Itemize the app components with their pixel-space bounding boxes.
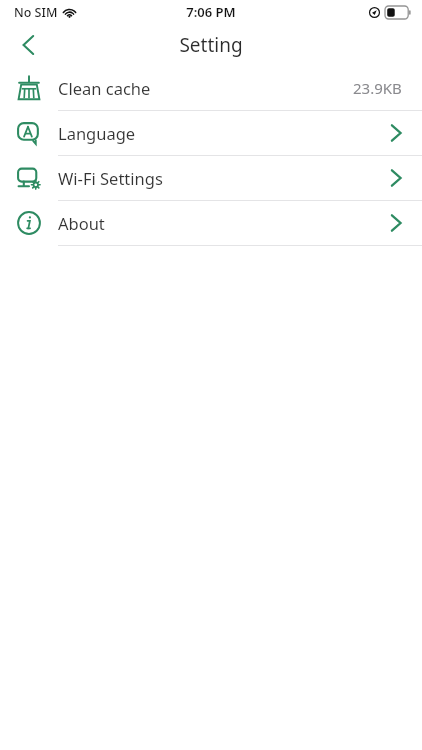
staticText: Wi-Fi Settings: [58, 167, 163, 189]
button[interactable]: Back: [6, 24, 50, 66]
staticText: Language: [58, 122, 136, 144]
staticText: Clean cache: [58, 77, 151, 99]
staticText: 7:06 PM: [186, 3, 236, 21]
button[interactable]: About: [0, 201, 422, 245]
button[interactable]: Clean cache: [0, 66, 422, 110]
staticText: About: [58, 212, 105, 234]
staticText: No SIM: [14, 4, 58, 21]
staticText: 23.9KB: [353, 78, 402, 98]
staticText: Setting: [179, 32, 243, 58]
button[interactable]: Wi-Fi Settings: [0, 156, 422, 200]
button[interactable]: Language: [0, 111, 422, 155]
